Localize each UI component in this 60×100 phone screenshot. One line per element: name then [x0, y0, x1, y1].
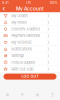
- button[interactable]: Cart: [30, 89, 45, 100]
- staticText: Rate Our App: [11, 67, 33, 71]
- staticText: LTE: [26, 1, 31, 5]
- staticText: Delivery Address: [11, 27, 40, 31]
- button[interactable]: LOG OUT: [3, 74, 56, 80]
- staticText: Settings: [11, 53, 24, 58]
- staticText: Payment Methods: [11, 33, 40, 38]
- staticText: LOG OUT: [21, 74, 38, 79]
- staticText: My Orders: [11, 13, 28, 18]
- button[interactable]: My Wishlist: [0, 39, 60, 46]
- staticText: 9:41: [2, 1, 8, 5]
- button[interactable]: Account: [45, 89, 60, 100]
- button[interactable]: Search: [15, 89, 30, 100]
- staticText: My Account: [16, 6, 44, 12]
- staticText: My Wishlist: [11, 40, 31, 45]
- staticText: Help & Support: [11, 60, 35, 65]
- button[interactable]: Delivery Address: [0, 26, 60, 33]
- button[interactable]: Payment Methods: [0, 33, 60, 39]
- button[interactable]: Back: [0, 5, 7, 12]
- staticText: Notifications: [11, 47, 32, 51]
- button[interactable]: Home: [0, 89, 15, 100]
- staticText: My Profile: [11, 20, 27, 25]
- button[interactable]: My Profile: [0, 19, 60, 26]
- button[interactable]: Help & Support: [0, 59, 60, 66]
- button[interactable]: Rate Our App: [0, 66, 60, 73]
- button[interactable]: Notifications: [0, 46, 60, 53]
- staticText: 100%: [50, 1, 58, 5]
- button[interactable]: Settings: [0, 53, 60, 59]
- button[interactable]: My Orders: [0, 13, 60, 19]
